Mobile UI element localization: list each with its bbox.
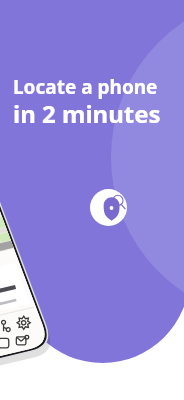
- staticText: Locate a phone: [13, 74, 158, 100]
- staticText: in 2 minutes: [13, 97, 161, 130]
- button[interactable]: [90, 189, 127, 226]
